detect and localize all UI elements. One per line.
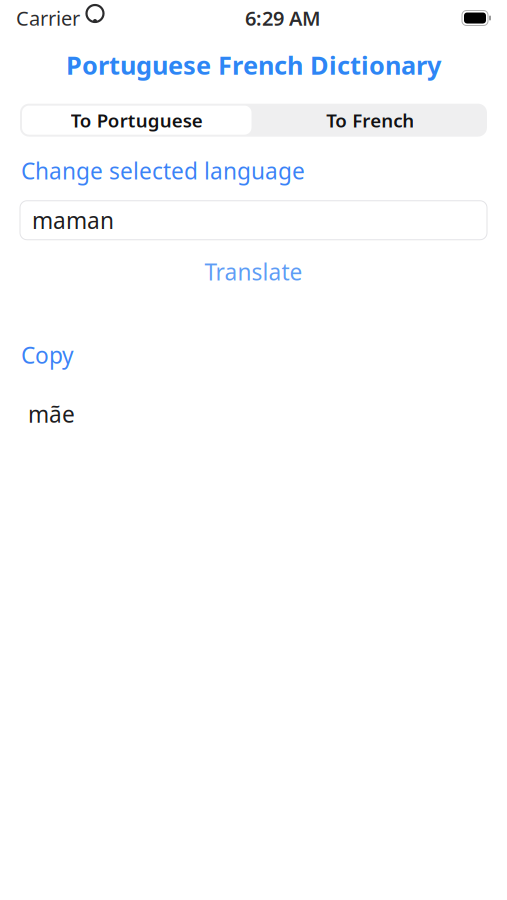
- staticText: To Portuguese: [71, 108, 203, 132]
- button[interactable]: To Portuguese: [22, 106, 251, 135]
- staticText: 6:29 AM: [245, 5, 321, 31]
- staticText: Change selected language: [21, 156, 305, 186]
- button[interactable]: Translate: [20, 254, 487, 290]
- staticText: Portuguese French Dictionary: [66, 48, 441, 82]
- staticText: Translate: [204, 257, 302, 287]
- staticText: mãe: [28, 399, 75, 429]
- button[interactable]: Change selected language: [21, 154, 305, 188]
- button[interactable]: Copy: [21, 338, 74, 372]
- button[interactable]: To French: [253, 104, 487, 137]
- staticText: Carrier: [16, 5, 80, 31]
- staticText: maman: [32, 205, 114, 235]
- staticText: To French: [326, 108, 414, 132]
- button[interactable]: maman: [20, 201, 487, 240]
- staticText: Copy: [21, 340, 74, 370]
